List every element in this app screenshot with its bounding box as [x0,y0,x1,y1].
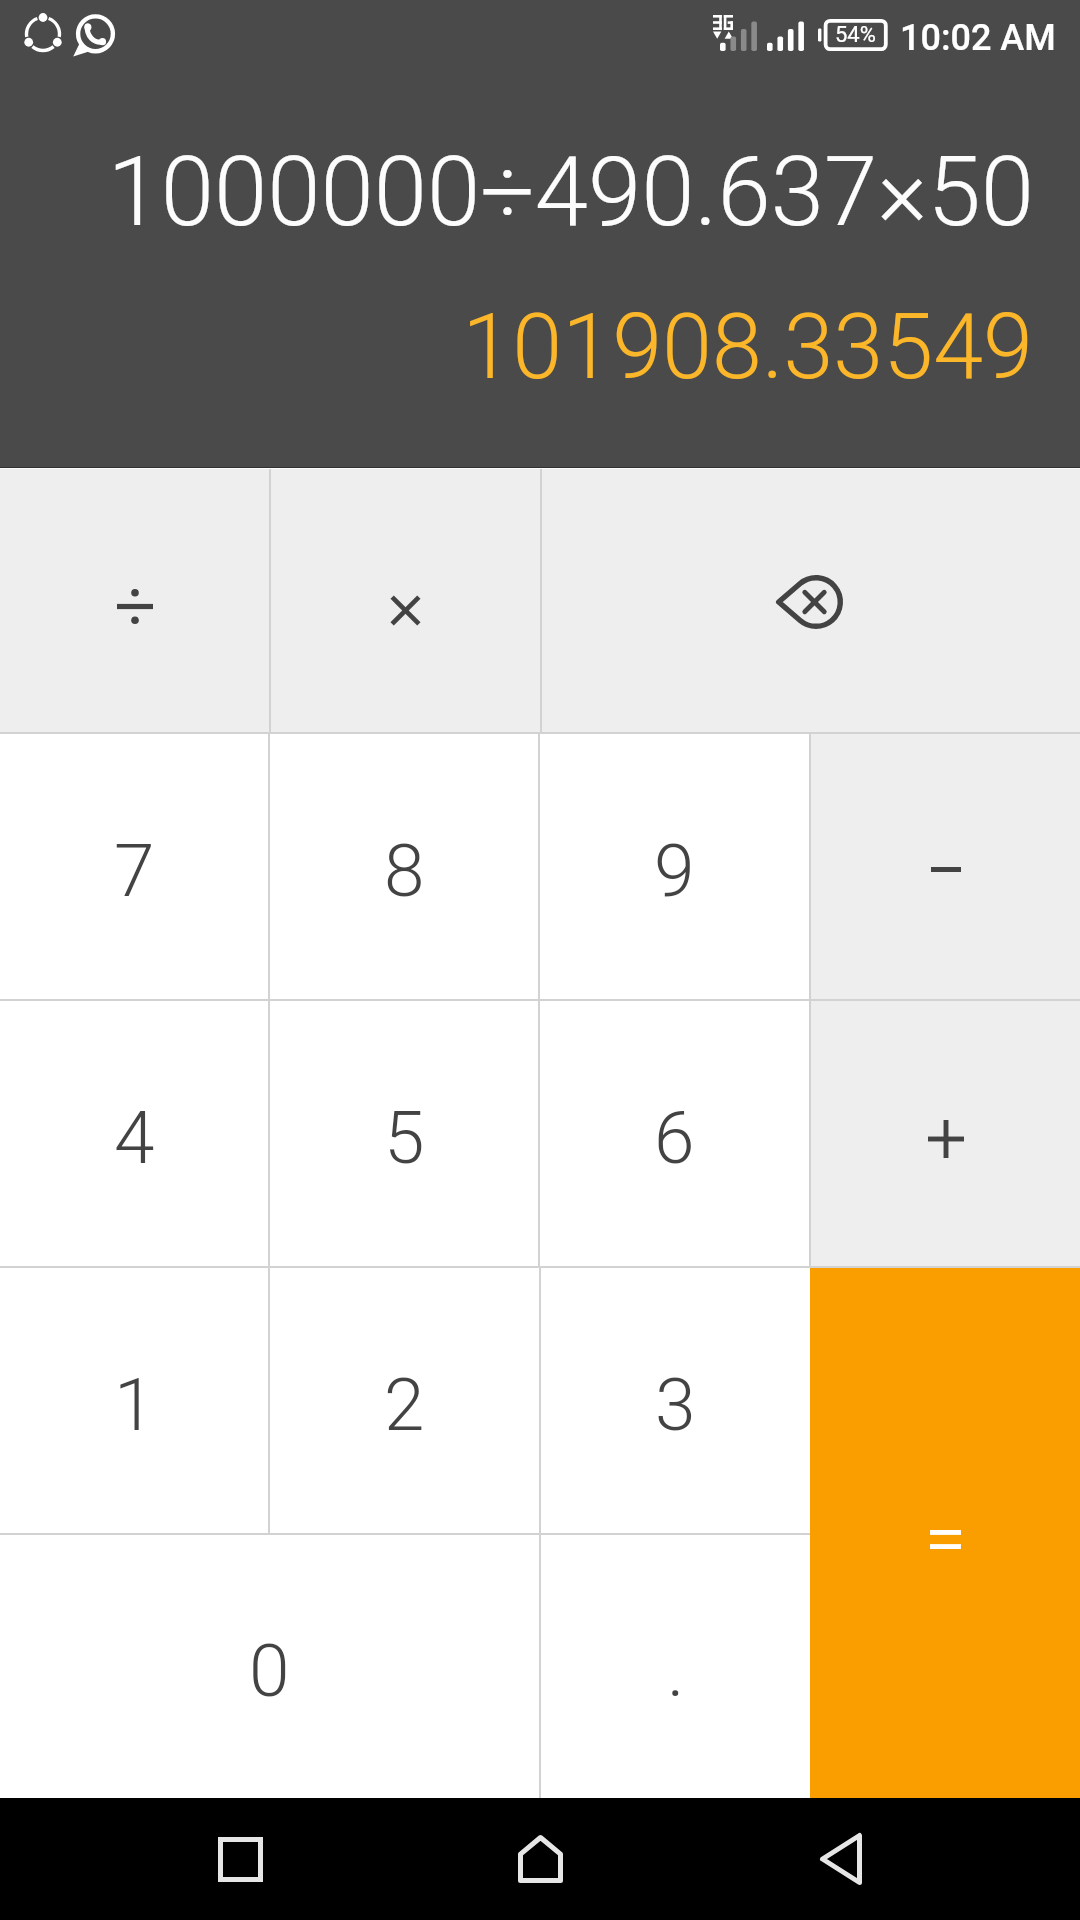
button[interactable]: 6 [540,1001,809,1266]
button[interactable]: . [541,1535,810,1798]
button[interactable]: 9 [540,734,809,999]
staticText: 101908.33549 [462,295,1033,400]
button[interactable]: 0 [0,1535,539,1798]
staticText: 54% [835,22,876,48]
staticText: 7 [114,828,155,914]
staticText: 3 [655,1362,696,1448]
button[interactable]: Divide [0,468,269,732]
staticText: . [667,1628,685,1714]
button[interactable]: 7 [0,734,268,999]
button[interactable]: 2 [270,1268,539,1533]
staticText: 1000000÷490.637×50 [107,136,1034,249]
button[interactable]: Home [420,1798,660,1920]
staticText: 0 [249,1628,290,1714]
button[interactable]: Equals [810,1268,1080,1798]
staticText: 8 [384,828,425,914]
staticText: 1 [114,1362,155,1448]
button[interactable]: 1 [0,1268,268,1533]
button[interactable]: Recent apps [120,1798,360,1920]
button[interactable]: 4 [0,1001,268,1266]
button[interactable]: 8 [270,734,538,999]
button[interactable]: Back [720,1798,960,1920]
staticText: 2 [384,1362,425,1448]
button[interactable]: Plus [811,1001,1080,1266]
staticText: 6 [654,1095,695,1181]
staticText: 5 [384,1095,425,1181]
staticText: 10:02 AM [900,17,1056,59]
button[interactable]: Multiply [271,468,540,732]
button[interactable]: Backspace [542,468,1080,732]
staticText: 4 [114,1095,155,1181]
staticText: 9 [654,828,695,914]
button[interactable]: Minus [811,734,1080,999]
button[interactable]: 5 [270,1001,538,1266]
button[interactable]: 3 [541,1268,810,1533]
